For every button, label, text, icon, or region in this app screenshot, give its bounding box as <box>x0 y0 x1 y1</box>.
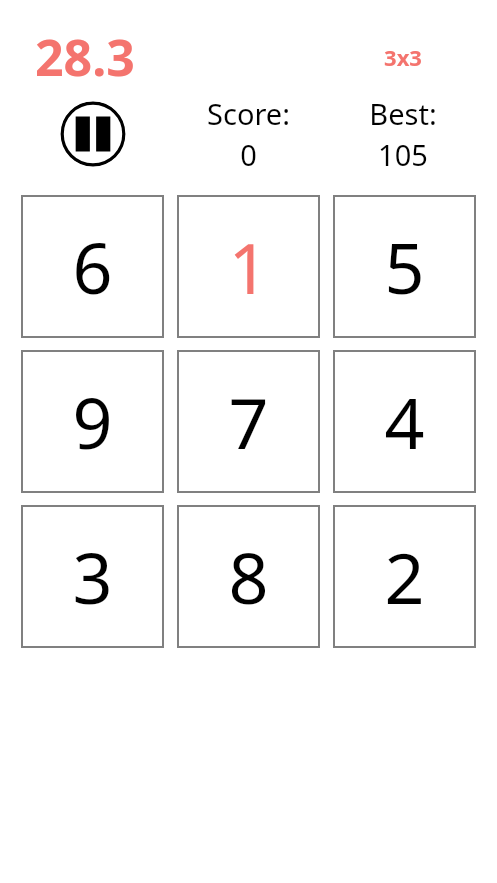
button[interactable]: 2 <box>333 505 476 648</box>
staticText: 9 <box>72 374 113 469</box>
staticText: 105 <box>378 135 428 174</box>
staticText: Best: <box>369 94 437 133</box>
button[interactable]: 7 <box>177 350 320 493</box>
button[interactable]: Pause <box>60 101 126 167</box>
staticText: Score: <box>207 94 290 133</box>
staticText: 8 <box>228 529 269 624</box>
button[interactable]: 1 <box>177 195 320 338</box>
staticText: 28.3 <box>35 23 135 91</box>
button[interactable]: 6 <box>21 195 164 338</box>
staticText: 6 <box>72 219 113 314</box>
button[interactable]: 5 <box>333 195 476 338</box>
button[interactable]: 8 <box>177 505 320 648</box>
button[interactable]: 3 <box>21 505 164 648</box>
staticText: 3 <box>72 529 113 624</box>
staticText: 4 <box>384 374 425 469</box>
button[interactable]: Score: <box>207 94 290 174</box>
button[interactable]: 4 <box>333 350 476 493</box>
button[interactable]: Best: <box>369 94 437 174</box>
button[interactable]: 9 <box>21 350 164 493</box>
staticText: 7 <box>228 374 269 469</box>
staticText: 0 <box>240 135 257 174</box>
staticText: 5 <box>384 219 425 314</box>
staticText: 1 <box>228 219 269 314</box>
staticText: 2 <box>384 529 425 624</box>
button[interactable]: 3x3 <box>384 42 422 72</box>
